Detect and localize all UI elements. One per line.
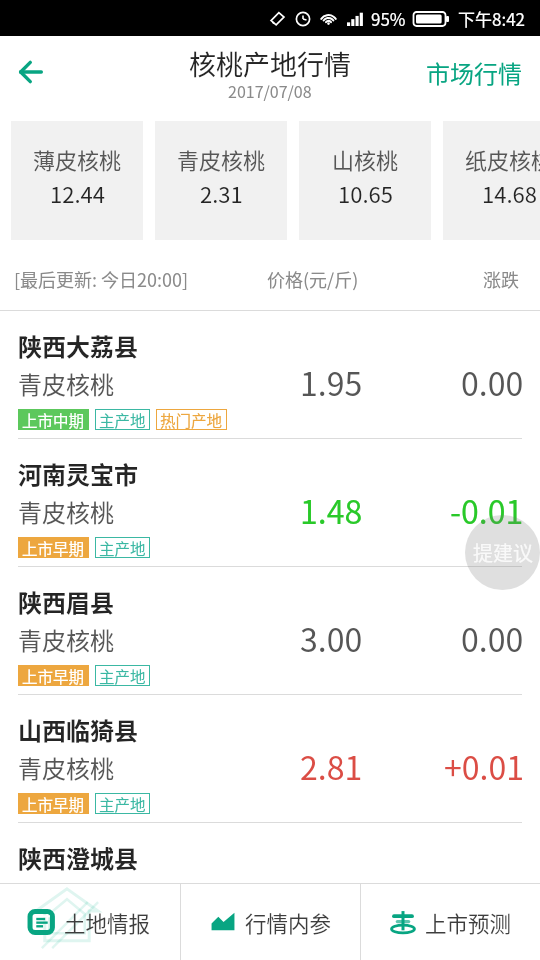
staticText: 下午8:42 xyxy=(458,6,526,31)
staticText: 3.00 xyxy=(300,615,363,661)
staticText: -0.01 xyxy=(450,487,524,533)
staticText: 2.81 xyxy=(300,743,363,789)
staticText: 青皮核桃 xyxy=(18,494,114,529)
staticText: 上市早期 xyxy=(22,537,85,558)
staticText: 0.00 xyxy=(461,615,524,661)
staticText: 青皮核桃 xyxy=(177,143,266,175)
button[interactable]: 上市预测 xyxy=(361,884,540,960)
button[interactable]: Back xyxy=(0,36,61,108)
staticText: 主产地 xyxy=(99,409,146,430)
button[interactable]: 青皮核桃 xyxy=(155,121,287,240)
staticText: 山西临猗县 xyxy=(18,712,138,747)
button[interactable]: 薄皮核桃 xyxy=(11,121,143,240)
staticText: 上市预测 xyxy=(425,907,512,938)
staticText: 主产地 xyxy=(99,793,146,814)
staticText: 行情内参 xyxy=(245,907,332,938)
staticText: 提建议 xyxy=(473,538,533,567)
staticText: 95% xyxy=(371,6,406,31)
button[interactable]: 纸皮核桃 xyxy=(443,121,540,240)
staticText: 14.68 xyxy=(482,177,537,209)
staticText: 核桃产地行情 xyxy=(189,44,351,83)
staticText: 12.44 xyxy=(50,177,105,209)
staticText: 陕西澄城县 xyxy=(18,840,138,875)
button[interactable]: 山核桃 xyxy=(299,121,431,240)
staticText: 陕西大荔县 xyxy=(18,328,138,363)
button[interactable]: 陕西眉县 xyxy=(0,567,540,695)
staticText: 上市早期 xyxy=(22,665,85,686)
button[interactable]: 山西临猗县 xyxy=(0,695,540,823)
staticText: 2.31 xyxy=(200,177,243,209)
button[interactable]: 行情内参 xyxy=(181,884,360,960)
staticText: 价格(元/斤) xyxy=(267,266,359,292)
staticText: 青皮核桃 xyxy=(18,366,114,401)
staticText: 青皮核桃 xyxy=(18,622,114,657)
button[interactable]: 陕西澄城县 xyxy=(0,823,540,883)
staticText: 1.95 xyxy=(300,359,363,405)
staticText: 主产地 xyxy=(99,665,146,686)
staticText: 2017/07/08 xyxy=(228,79,312,102)
staticText: 山核桃 xyxy=(332,143,399,175)
staticText: 上市中期 xyxy=(22,409,85,430)
staticText: 1.48 xyxy=(300,487,363,533)
staticText: 涨跌 xyxy=(483,266,519,292)
staticText: 市场行情 xyxy=(426,55,522,90)
staticText: 上市早期 xyxy=(22,793,85,814)
staticText: 10.65 xyxy=(338,177,393,209)
button[interactable]: 提建议 xyxy=(465,515,540,590)
staticText: 主产地 xyxy=(99,537,146,558)
staticText: [最后更新: 今日20:00] xyxy=(14,266,189,292)
staticText: 热门产地 xyxy=(160,409,223,430)
staticText: 薄皮核桃 xyxy=(33,143,122,175)
button[interactable]: 陕西大荔县 xyxy=(0,311,540,439)
staticText: 陕西眉县 xyxy=(18,584,114,619)
staticText: 纸皮核桃 xyxy=(465,143,540,175)
button[interactable]: 土地情报 xyxy=(0,884,180,960)
staticText: 河南灵宝市 xyxy=(18,456,138,491)
button[interactable]: 河南灵宝市 xyxy=(0,439,540,567)
staticText: 土地情报 xyxy=(64,907,151,938)
staticText: 0.00 xyxy=(461,359,524,405)
staticText: 青皮核桃 xyxy=(18,750,114,785)
staticText: +0.01 xyxy=(444,743,524,789)
button[interactable]: 市场行情 xyxy=(426,36,522,108)
